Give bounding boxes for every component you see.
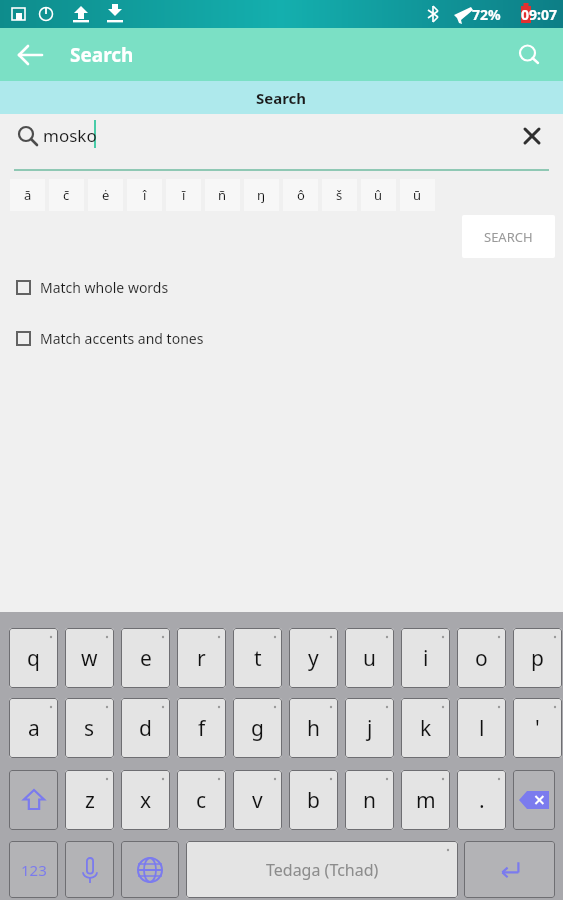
staticText: k bbox=[420, 714, 432, 743]
staticText: j bbox=[367, 714, 373, 743]
button[interactable]: c̄ bbox=[49, 179, 84, 211]
button[interactable]: c bbox=[177, 770, 226, 830]
staticText: h bbox=[307, 714, 320, 743]
button[interactable]: m bbox=[401, 770, 450, 830]
button[interactable]: x bbox=[121, 770, 170, 830]
staticText: Match accents and tones bbox=[40, 329, 204, 348]
button[interactable]: j bbox=[345, 698, 394, 758]
button[interactable]: i bbox=[401, 628, 450, 688]
staticText: e bbox=[140, 644, 152, 673]
button[interactable]: t bbox=[233, 628, 282, 688]
button[interactable]: u bbox=[345, 628, 394, 688]
staticText: ī bbox=[182, 186, 186, 204]
staticText: g bbox=[251, 714, 264, 743]
button[interactable]: Clear bbox=[513, 117, 551, 155]
button[interactable]: Change language bbox=[121, 841, 179, 898]
staticText: 123 bbox=[21, 860, 47, 880]
staticText: r bbox=[197, 644, 206, 673]
button[interactable]: l bbox=[457, 698, 506, 758]
staticText: s bbox=[84, 714, 95, 743]
button[interactable]: Search bbox=[256, 88, 307, 108]
button[interactable]: w bbox=[65, 628, 114, 688]
staticText: w bbox=[81, 644, 98, 673]
staticText: z bbox=[85, 786, 95, 815]
button[interactable]: v bbox=[233, 770, 282, 830]
button[interactable]: n bbox=[345, 770, 394, 830]
staticText: i bbox=[423, 644, 429, 673]
staticText: c bbox=[196, 786, 207, 815]
button[interactable]: f bbox=[177, 698, 226, 758]
button[interactable]: ' bbox=[513, 698, 562, 758]
staticText: ' bbox=[535, 714, 540, 743]
staticText: m bbox=[416, 786, 436, 815]
staticText: c̄ bbox=[63, 186, 70, 204]
staticText: t bbox=[254, 644, 262, 673]
staticText: y bbox=[308, 644, 319, 673]
staticText: û bbox=[374, 186, 383, 204]
staticText: l bbox=[479, 714, 485, 743]
button[interactable]: q bbox=[9, 628, 58, 688]
staticText: mosko bbox=[43, 124, 97, 147]
button[interactable]: o bbox=[457, 628, 506, 688]
button[interactable]: a bbox=[9, 698, 58, 758]
staticText: d bbox=[139, 714, 152, 743]
staticText: ū bbox=[413, 186, 422, 204]
staticText: ŋ bbox=[257, 186, 266, 204]
staticText: q bbox=[27, 644, 40, 673]
button[interactable]: Tedaga (Tchad) bbox=[186, 841, 458, 898]
staticText: n bbox=[363, 786, 376, 815]
button[interactable]: ū bbox=[400, 179, 435, 211]
button[interactable]: Enter bbox=[464, 841, 555, 898]
button[interactable]: SEARCH bbox=[462, 215, 555, 258]
button[interactable]: Shift bbox=[9, 770, 58, 830]
button[interactable]: Voice input bbox=[65, 841, 114, 898]
button[interactable]: y bbox=[289, 628, 338, 688]
button[interactable]: 123 bbox=[9, 841, 58, 898]
staticText: v bbox=[252, 786, 263, 815]
button[interactable]: r bbox=[177, 628, 226, 688]
button[interactable]: z bbox=[65, 770, 114, 830]
staticText: Match whole words bbox=[40, 278, 169, 297]
staticText: p bbox=[531, 644, 544, 673]
button[interactable]: Back bbox=[12, 32, 58, 78]
staticText: x bbox=[140, 786, 152, 815]
button[interactable]: Match accents and tones bbox=[0, 325, 563, 351]
button[interactable]: ė bbox=[88, 179, 123, 211]
button[interactable]: h bbox=[289, 698, 338, 758]
button[interactable]: d bbox=[121, 698, 170, 758]
staticText: a bbox=[28, 714, 40, 743]
staticText: SEARCH bbox=[484, 228, 533, 246]
button[interactable]: ô bbox=[283, 179, 318, 211]
staticText: Tedaga (Tchad) bbox=[266, 859, 379, 881]
staticText: . bbox=[479, 786, 485, 815]
button[interactable]: k bbox=[401, 698, 450, 758]
staticText: o bbox=[475, 644, 488, 673]
staticText: u bbox=[363, 644, 376, 673]
button[interactable]: ŋ bbox=[244, 179, 279, 211]
button[interactable]: ñ bbox=[205, 179, 240, 211]
staticText: ô bbox=[297, 186, 305, 204]
button[interactable]: Match whole words bbox=[0, 274, 563, 300]
staticText: ñ bbox=[218, 186, 227, 204]
button[interactable]: Backspace bbox=[513, 770, 555, 830]
staticText: Search bbox=[70, 42, 134, 68]
staticText: ā bbox=[24, 186, 32, 204]
button[interactable]: û bbox=[361, 179, 396, 211]
button[interactable]: ī bbox=[166, 179, 201, 211]
button[interactable]: ā bbox=[10, 179, 45, 211]
button[interactable]: e bbox=[121, 628, 170, 688]
button[interactable]: p bbox=[513, 628, 562, 688]
button[interactable]: Search bbox=[507, 33, 551, 77]
staticText: b bbox=[307, 786, 320, 815]
button[interactable]: b bbox=[289, 770, 338, 830]
button[interactable]: s bbox=[65, 698, 114, 758]
button[interactable]: . bbox=[457, 770, 506, 830]
staticText: 09:07 bbox=[521, 5, 557, 24]
staticText: 72% bbox=[472, 5, 501, 24]
staticText: ė bbox=[102, 186, 110, 204]
button[interactable]: g bbox=[233, 698, 282, 758]
button[interactable]: š bbox=[322, 179, 357, 211]
staticText: f bbox=[198, 714, 206, 743]
staticText: š bbox=[336, 186, 343, 204]
button[interactable]: î bbox=[127, 179, 162, 211]
